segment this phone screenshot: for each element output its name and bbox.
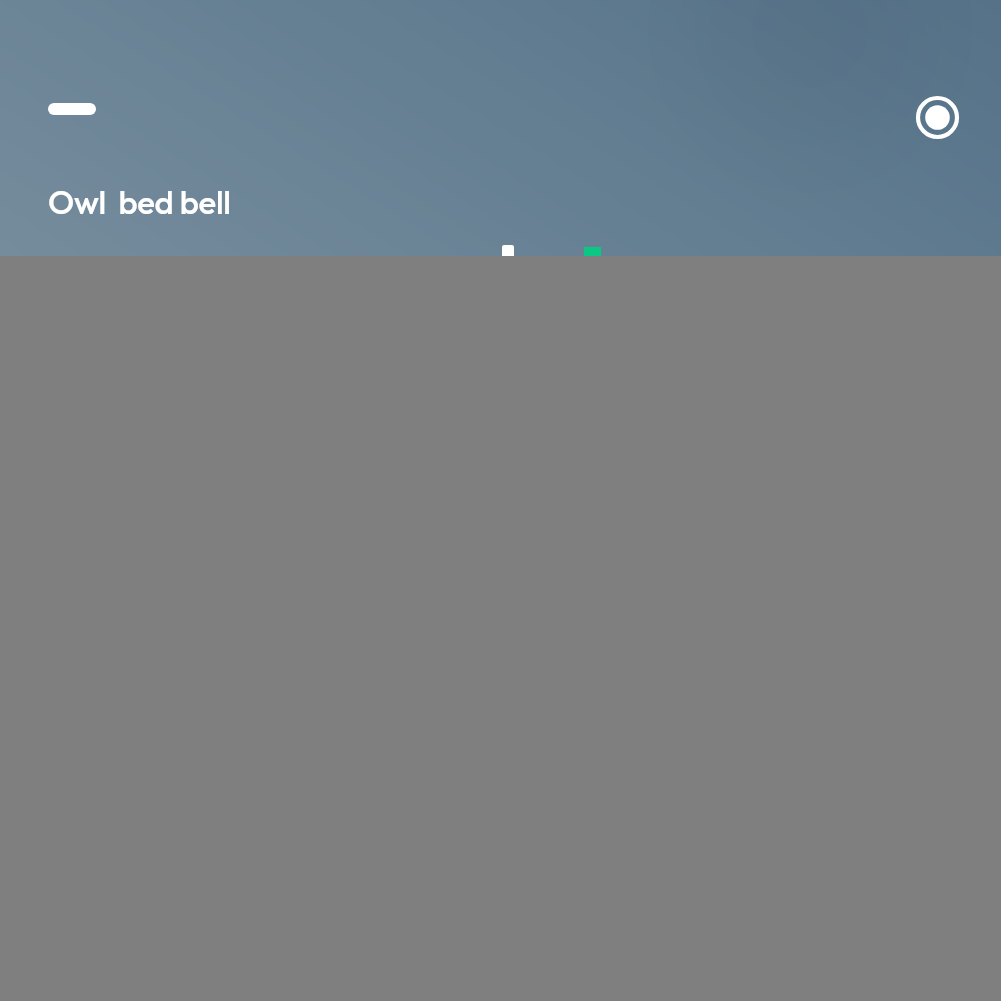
button[interactable]: Record bbox=[911, 91, 964, 144]
staticText: Owl bed bell bbox=[48, 181, 231, 223]
button[interactable]: Collapse bbox=[32, 88, 112, 130]
button[interactable]: Stop bbox=[502, 245, 514, 256]
